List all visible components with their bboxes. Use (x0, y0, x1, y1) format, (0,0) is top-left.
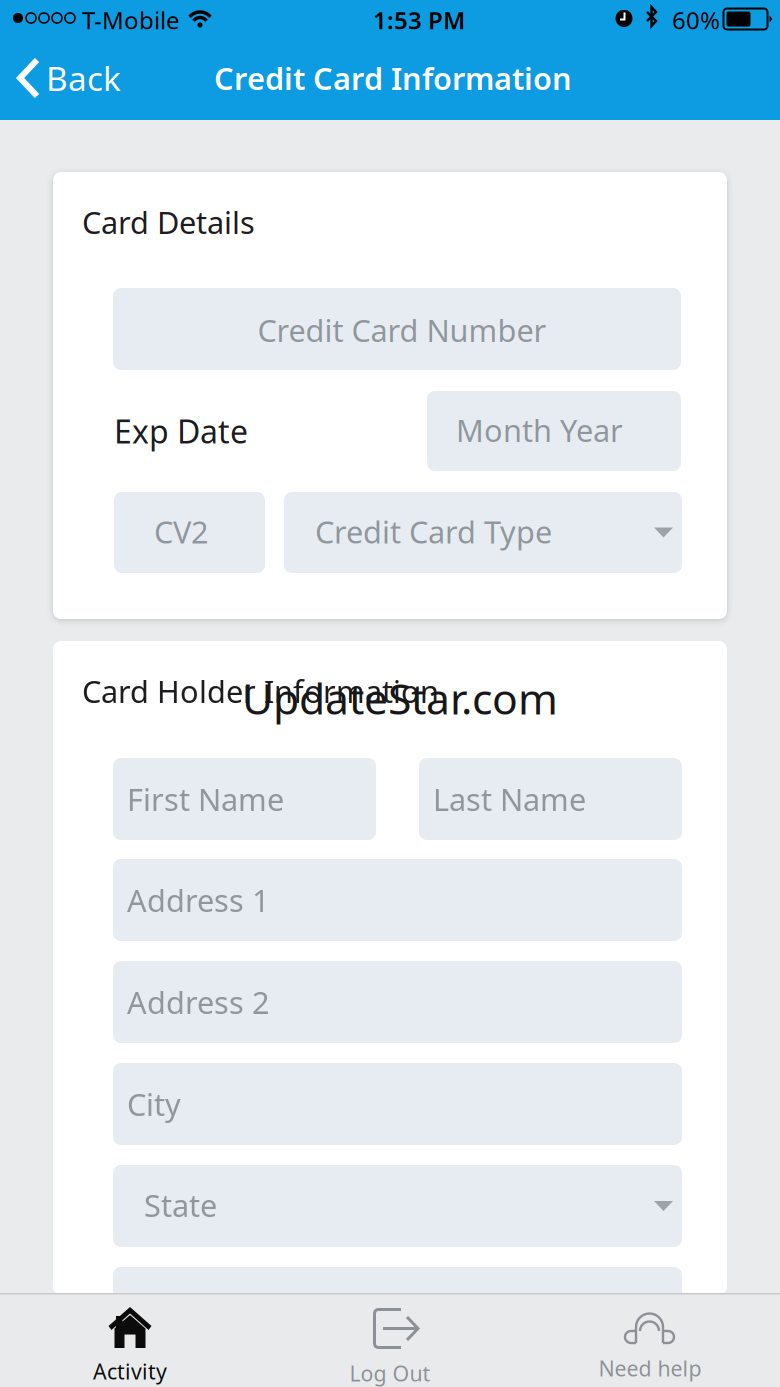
button[interactable]: CV2 (114, 492, 265, 573)
staticText: Last Name (433, 779, 586, 819)
staticText: State (144, 1185, 217, 1225)
staticText: Credit Card Type (315, 511, 552, 552)
button[interactable]: State (113, 1165, 682, 1247)
staticText: Need help (598, 1354, 701, 1382)
button[interactable]: Credit Card Number (113, 288, 681, 370)
staticText: Month Year (456, 410, 623, 450)
button[interactable]: Need help (520, 1293, 780, 1387)
staticText: UpdateStar.com (242, 670, 558, 726)
button[interactable]: Back (0, 38, 260, 118)
button[interactable]: Credit Card Type (284, 492, 682, 573)
staticText: Activity (93, 1357, 167, 1385)
staticText: Credit Card Number (257, 310, 546, 350)
button[interactable]: First Name (113, 758, 376, 840)
button[interactable]: Log Out (260, 1293, 520, 1387)
button[interactable]: Address 2 (113, 961, 682, 1043)
staticText: Card Holder Information (82, 671, 439, 711)
button[interactable] (113, 1267, 682, 1349)
staticText: City (127, 1084, 181, 1124)
staticText: Exp Date (114, 410, 248, 452)
button[interactable]: City (113, 1063, 682, 1145)
staticText: CV2 (154, 511, 209, 552)
staticText: First Name (127, 779, 284, 819)
staticText: Address 1 (127, 880, 270, 920)
button[interactable]: Month Year (427, 391, 681, 471)
staticText: 1:53 PM (373, 4, 465, 36)
staticText: 60% (672, 4, 720, 36)
staticText: T-Mobile (82, 4, 180, 36)
staticText: Log Out (349, 1359, 430, 1387)
staticText: Address 2 (127, 982, 270, 1022)
button[interactable]: Address 1 (113, 859, 682, 941)
staticText: Back (46, 56, 121, 100)
staticText: Card Details (82, 202, 255, 242)
staticText: Credit Card Information (214, 58, 572, 98)
button[interactable]: Activity (0, 1293, 260, 1387)
button[interactable]: Last Name (419, 758, 682, 840)
